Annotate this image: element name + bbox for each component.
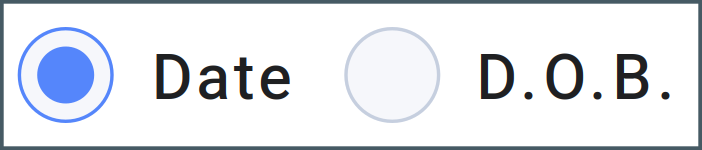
staticText: D.O.B. — [476, 41, 674, 114]
staticText: Date — [152, 41, 291, 114]
button[interactable]: Date — [18, 27, 291, 123]
button[interactable]: D.O.B. — [344, 27, 674, 123]
